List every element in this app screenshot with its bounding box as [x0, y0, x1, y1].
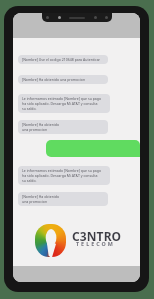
button[interactable]: [Nombre] Ha obtenido [18, 192, 108, 206]
staticText: Le informamos estimado [Nombre] que su p… [22, 96, 102, 101]
staticText: ha sido aplicado. Descarga Mi AT&T y con… [22, 173, 98, 178]
staticText: una promocion [22, 199, 48, 204]
staticText: TELECOM [76, 240, 115, 247]
button[interactable]: [Nombre] Ha obtenido [18, 120, 108, 134]
staticText: [Nombre] Ha obtenido [22, 122, 60, 127]
staticText: una promocion [22, 127, 48, 132]
staticText: [Nombre] Use el codigo 210648 para Auten… [22, 57, 101, 62]
staticText: [Nombre] Ha obtenido [22, 194, 60, 199]
staticText: su saldo. [22, 178, 37, 183]
staticText: [Nombre] Ha obtenido una promocion [22, 77, 86, 82]
button[interactable]: [Nombre] Use el codigo 210648 para Auten… [18, 55, 108, 64]
staticText: su saldo. [22, 106, 37, 111]
button[interactable]: [Nombre] Ha obtenido una promocion [18, 75, 108, 84]
button[interactable] [46, 140, 140, 157]
staticText: Le informamos estimado [Nombre] que su p… [22, 168, 102, 173]
staticText: C3NTRO [72, 228, 122, 244]
staticText: ha sido aplicado. Descarga Mi AT&T y con… [22, 101, 98, 106]
button[interactable]: Le informamos estimado [Nombre] que su p… [18, 166, 110, 185]
button[interactable]: Le informamos estimado [Nombre] que su p… [18, 94, 110, 113]
